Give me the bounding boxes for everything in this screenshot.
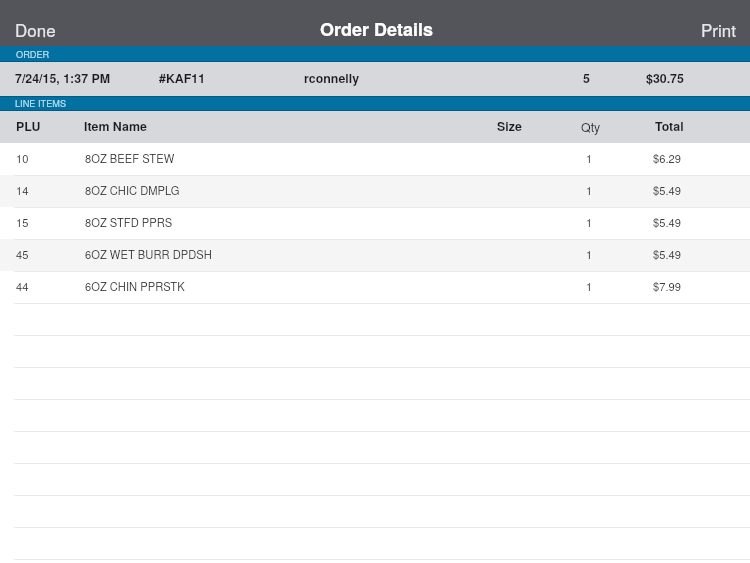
staticText: 1 [586,246,593,262]
staticText: $7.99 [653,278,681,294]
staticText: 10 [16,150,29,166]
staticText: ORDER [16,47,50,60]
staticText: $30.75 [646,69,684,87]
button[interactable]: Print [690,0,750,46]
staticText: Print [701,17,736,41]
staticText: #KAF11 [159,69,206,87]
staticText: 45 [16,246,29,262]
staticText: 7/24/15, 1:37 PM [15,69,111,87]
staticText: 6OZ WET BURR DPDSH [85,246,212,262]
staticText: 8OZ BEEF STEW [85,150,175,166]
staticText: 6OZ CHIN PPRSTK [85,278,185,294]
staticText: 14 [16,182,29,198]
staticText: 15 [16,214,29,230]
button[interactable] [0,175,750,207]
staticText: 1 [586,214,593,230]
staticText: 8OZ CHIC DMPLG [85,182,180,198]
staticText: $5.49 [653,246,681,262]
staticText: Size [497,117,522,135]
staticText: Order Details [320,16,434,42]
staticText: Done [15,17,56,41]
staticText: $5.49 [653,214,681,230]
staticText: 5 [583,69,590,87]
staticText: Qty [581,118,601,136]
staticText: 1 [586,150,593,166]
staticText: $6.29 [653,150,681,166]
staticText: 1 [586,182,593,198]
button[interactable] [0,143,750,175]
staticText: 8OZ STFD PPRS [85,214,173,230]
staticText: 44 [16,278,29,294]
staticText: Item Name [84,117,147,135]
button[interactable] [0,239,750,271]
staticText: rconnelly [304,69,360,87]
staticText: PLU [16,117,41,135]
staticText: LINE ITEMS [15,96,67,109]
staticText: 1 [586,278,593,294]
button[interactable]: Done [0,0,72,46]
staticText: Total [655,117,684,135]
button[interactable] [0,62,750,96]
button[interactable] [0,207,750,239]
button[interactable] [0,271,750,303]
staticText: $5.49 [653,182,681,198]
